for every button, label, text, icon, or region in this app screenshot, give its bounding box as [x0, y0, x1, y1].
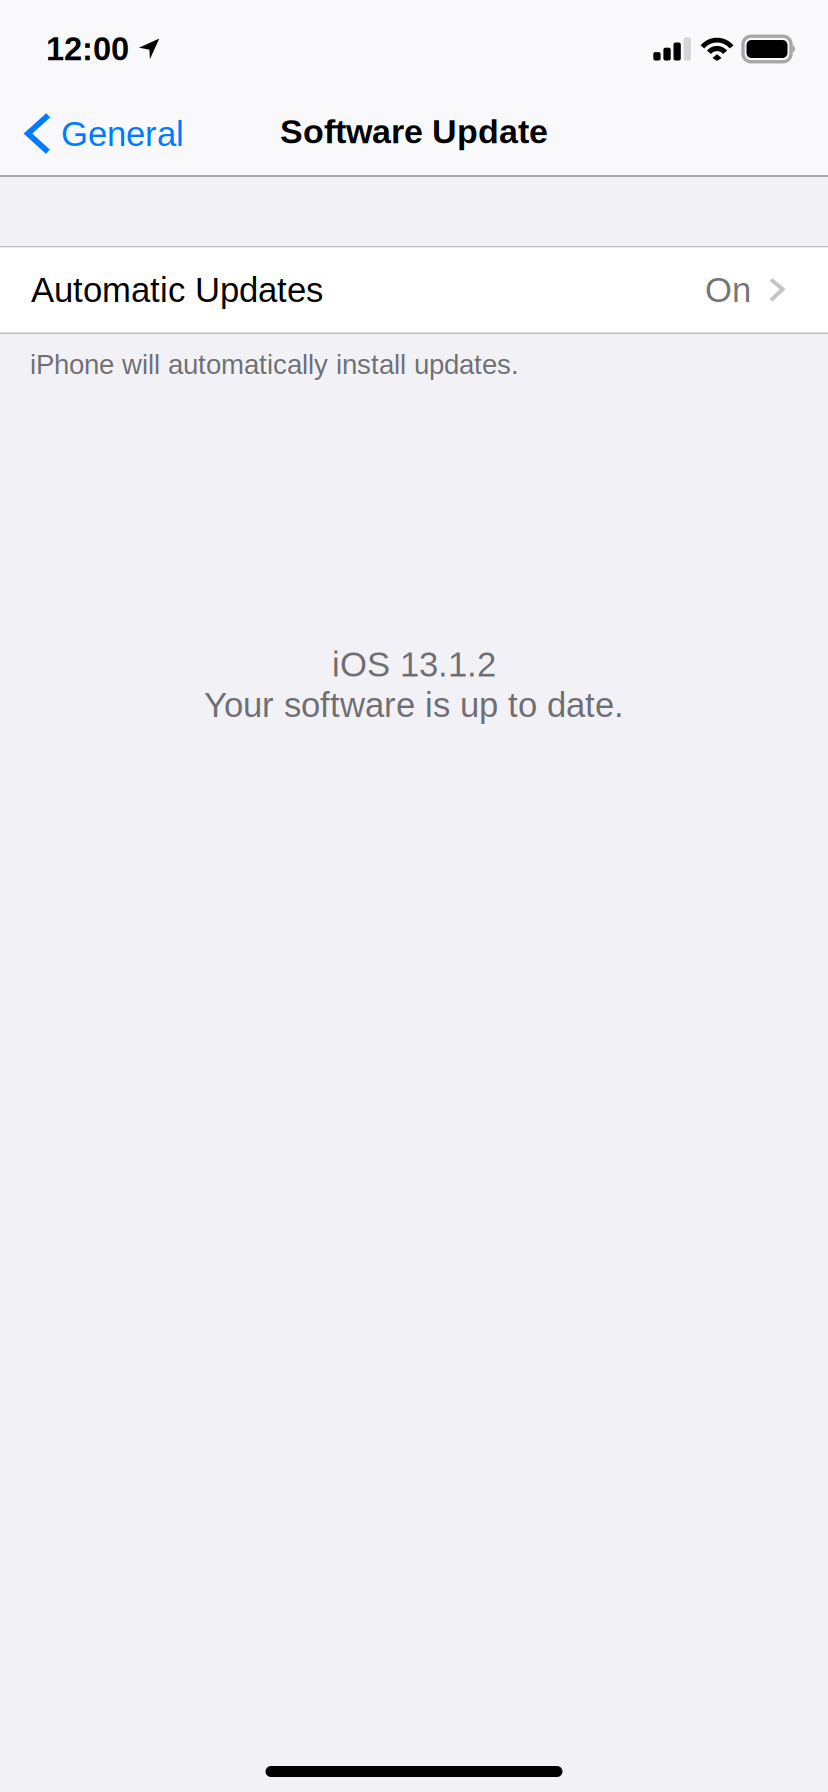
staticText: 12:00: [46, 31, 129, 67]
staticText: General: [61, 115, 184, 153]
button[interactable]: Automatic Updates: [0, 247, 828, 332]
staticText: iPhone will automatically install update…: [30, 349, 519, 380]
staticText: Automatic Updates: [31, 271, 323, 309]
staticText: Your software is up to date.: [204, 686, 624, 724]
staticText: On: [705, 271, 751, 309]
button[interactable]: General: [0, 88, 208, 175]
staticText: Software Update: [280, 112, 548, 150]
staticText: iOS 13.1.2: [332, 645, 496, 684]
